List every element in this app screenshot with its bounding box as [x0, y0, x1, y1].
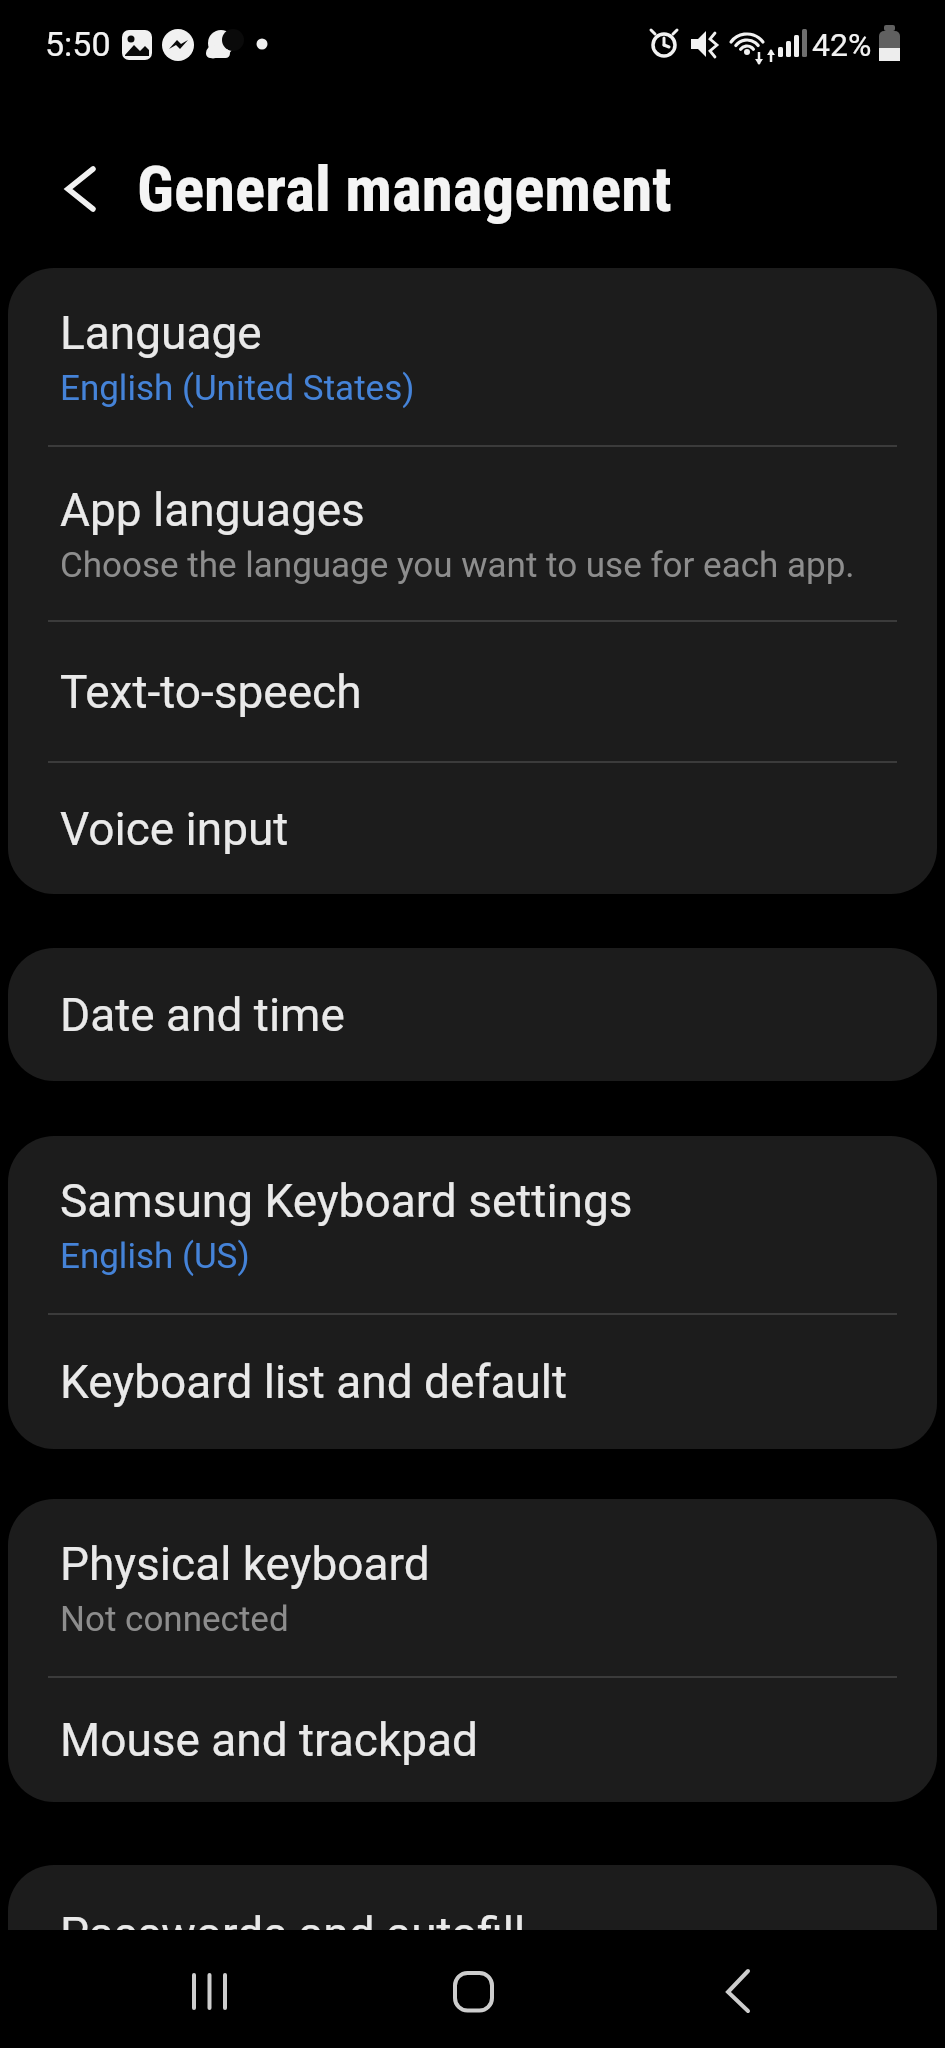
staticText: Date and time — [60, 988, 345, 1042]
staticText: English (United States) — [60, 368, 415, 409]
staticText: Physical keyboard — [60, 1537, 430, 1591]
staticText: Not connected — [60, 1599, 289, 1640]
button[interactable] — [170, 1966, 246, 2016]
staticText: Text-to-speech — [60, 665, 362, 719]
staticText: App languages — [60, 483, 365, 537]
button[interactable]: Text-to-speech — [8, 622, 937, 761]
staticText: Samsung Keyboard settings — [60, 1174, 633, 1228]
button[interactable]: Mouse and trackpad — [8, 1678, 937, 1802]
staticText: Language — [60, 306, 262, 360]
button[interactable]: Date and time — [8, 948, 937, 1081]
button[interactable]: Passwords and autofill — [8, 1865, 937, 2003]
button[interactable]: Voice input — [8, 763, 937, 894]
button[interactable] — [705, 1966, 781, 2016]
button[interactable] — [440, 1966, 516, 2016]
button[interactable]: Keyboard list and default — [8, 1315, 937, 1449]
staticText: Mouse and trackpad — [60, 1713, 479, 1767]
staticText: Voice input — [60, 802, 289, 856]
staticText: 5:50 — [45, 24, 111, 64]
staticText: General management — [137, 153, 672, 227]
staticText: 42% — [812, 26, 872, 64]
staticText: English (US) — [60, 1236, 250, 1277]
button[interactable] — [40, 148, 125, 228]
staticText: Passwords and autofill — [60, 1907, 526, 1961]
button[interactable]: App languages — [8, 447, 937, 620]
staticText: Choose the language you want to use for … — [60, 545, 855, 586]
button[interactable]: Language — [8, 268, 937, 445]
staticText: Keyboard list and default — [60, 1355, 568, 1409]
button[interactable]: Samsung Keyboard settings — [8, 1136, 937, 1313]
button[interactable]: Physical keyboard — [8, 1499, 937, 1676]
